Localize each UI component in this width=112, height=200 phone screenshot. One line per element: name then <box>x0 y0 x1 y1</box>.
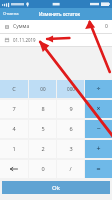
button[interactable]: 9 <box>57 100 84 118</box>
button[interactable]: − <box>85 120 112 138</box>
staticText: C <box>12 85 16 93</box>
staticText: Изменить остаток <box>39 11 81 17</box>
button[interactable]: × <box>85 100 112 118</box>
staticText: 000 <box>67 86 75 92</box>
staticText: 1 <box>12 145 16 153</box>
staticText: / <box>69 165 72 173</box>
staticText: + <box>96 144 101 154</box>
button[interactable]: 000 <box>57 80 84 98</box>
staticText: 0 <box>105 23 108 30</box>
button[interactable]: C <box>0 80 28 98</box>
button[interactable]: 8 <box>29 100 56 118</box>
staticText: = <box>96 164 101 174</box>
button[interactable]: 5 <box>29 120 56 138</box>
staticText: 3 <box>69 145 73 153</box>
button[interactable]: 00 <box>29 80 56 98</box>
button[interactable]: Ok <box>2 181 110 194</box>
button[interactable]: 2 <box>29 140 56 158</box>
button[interactable]: Backspace <box>0 160 28 178</box>
button[interactable]: ÷ <box>85 80 112 98</box>
button[interactable]: Сумма <box>0 20 112 33</box>
staticText: × <box>96 104 101 114</box>
staticText: Сумма <box>13 23 30 30</box>
button[interactable]: 4 <box>0 120 28 138</box>
button[interactable]: 6 <box>57 120 84 138</box>
button[interactable]: 1 <box>0 140 28 158</box>
staticText: ÷ <box>96 84 101 94</box>
staticText: 00 <box>40 86 46 92</box>
button[interactable]: 0 <box>29 160 56 178</box>
staticText: 01.11.2019 <box>13 37 36 43</box>
staticText: − <box>96 124 101 134</box>
staticText: 7 <box>12 105 16 113</box>
button[interactable]: / <box>57 160 84 178</box>
button[interactable]: 01.11.2019 <box>0 34 112 46</box>
button[interactable]: = <box>85 160 112 178</box>
staticText: 2 <box>41 145 45 153</box>
staticText: Отмена <box>3 11 19 17</box>
staticText: 5 <box>41 125 45 133</box>
staticText: 4 <box>12 125 16 133</box>
staticText: 0 <box>41 165 45 173</box>
button[interactable]: 7 <box>0 100 28 118</box>
staticText: 8 <box>41 105 45 113</box>
button[interactable]: Отмена <box>0 9 22 19</box>
staticText: 9 <box>69 105 73 113</box>
staticText: 6 <box>69 125 73 133</box>
staticText: Ok <box>52 184 60 192</box>
button[interactable]: 3 <box>57 140 84 158</box>
button[interactable]: + <box>85 140 112 158</box>
